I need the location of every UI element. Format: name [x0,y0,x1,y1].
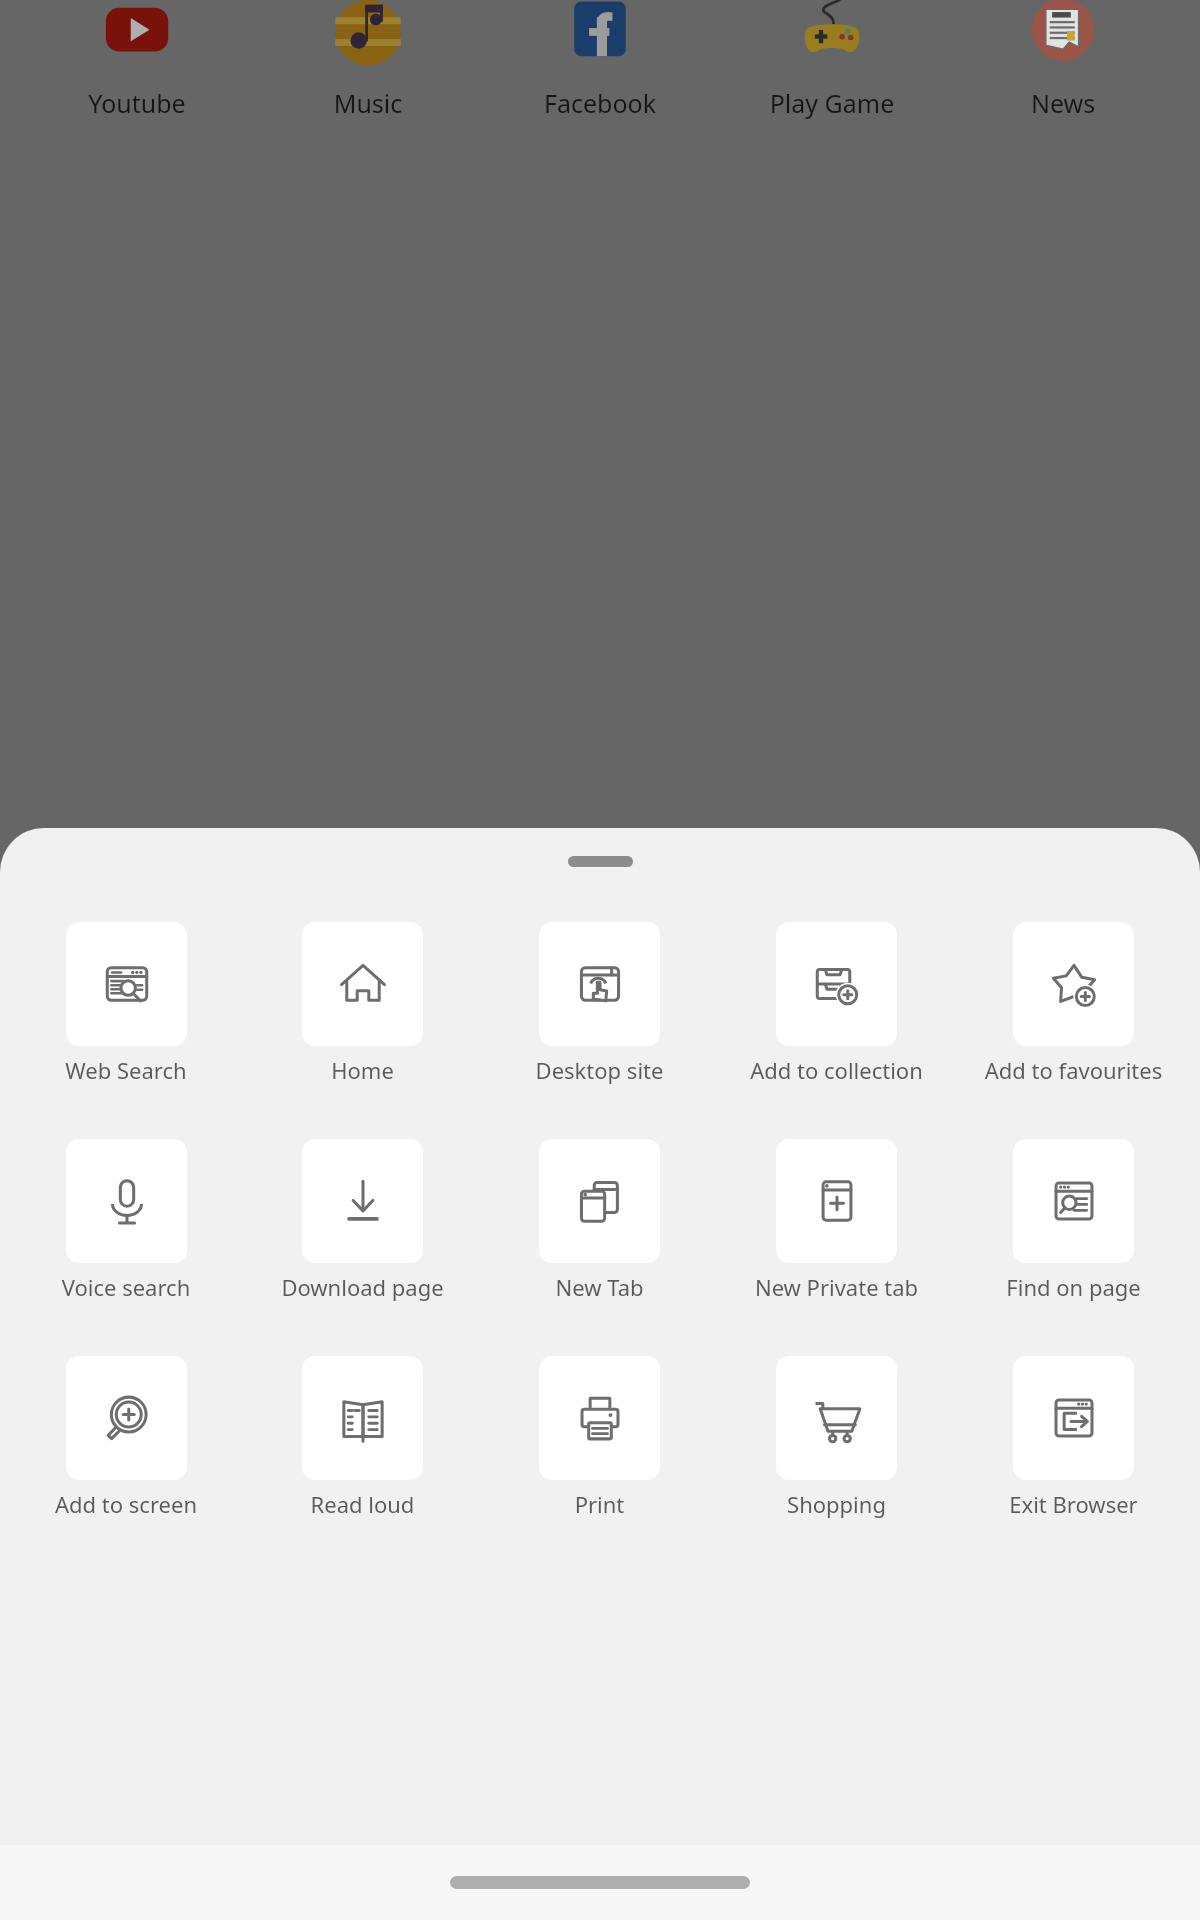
staticText: Facebook [505,86,695,120]
staticText: Print [481,1489,718,1519]
staticText: Add to collection [718,1055,955,1085]
button[interactable]: Exit Browser [955,1356,1192,1519]
button[interactable]: Shopping [718,1356,955,1519]
staticText: New Private tab [718,1272,955,1302]
staticText: Add to favourites [955,1055,1192,1085]
button[interactable]: News [968,0,1158,120]
staticText: Play Game [737,86,927,120]
staticText: Read loud [244,1489,481,1519]
button[interactable]: Find on page [955,1139,1192,1302]
staticText: Voice search [8,1272,244,1302]
button[interactable]: Play Game [737,0,927,120]
staticText: New Tab [481,1272,718,1302]
staticText: Youtube [42,86,232,120]
button[interactable]: Voice search [8,1139,244,1302]
button[interactable]: Read loud [244,1356,481,1519]
button[interactable]: Music [273,0,463,120]
button[interactable]: New Private tab [718,1139,955,1302]
button[interactable]: Print [481,1356,718,1519]
staticText: Shopping [718,1489,955,1519]
staticText: News [968,86,1158,120]
other: Home gesture bar [450,1876,750,1889]
button[interactable]: Home [244,922,481,1085]
button[interactable]: Add to favourites [955,922,1192,1085]
button[interactable]: Youtube [42,0,232,120]
button[interactable]: Facebook [505,0,695,120]
button[interactable]: Add to screen [8,1356,244,1519]
button[interactable]: Web Search [8,922,244,1085]
staticText: Desktop site [481,1055,718,1085]
staticText: Exit Browser [955,1489,1192,1519]
button[interactable]: Download page [244,1139,481,1302]
staticText: Download page [244,1272,481,1302]
staticText: Home [244,1055,481,1085]
button[interactable]: Add to collection [718,922,955,1085]
staticText: Add to screen [8,1489,244,1519]
staticText: Music [273,86,463,120]
button[interactable]: Desktop site [481,922,718,1085]
button[interactable]: New Tab [481,1139,718,1302]
staticText: Find on page [955,1272,1192,1302]
staticText: Web Search [8,1055,244,1085]
